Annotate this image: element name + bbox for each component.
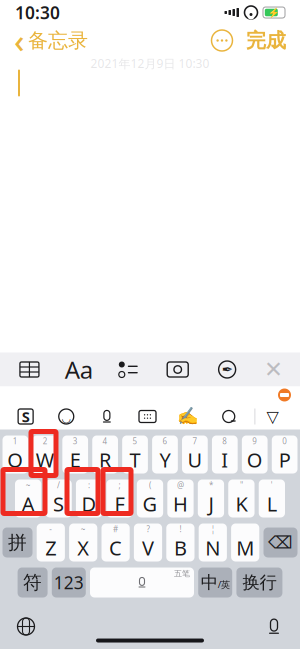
button[interactable]: ; xyxy=(106,479,133,517)
staticText: 五笔 xyxy=(174,569,190,578)
staticText: 备忘录 xyxy=(28,28,88,53)
button[interactable]: 5 xyxy=(122,435,148,473)
staticText: Z xyxy=(45,534,56,561)
staticText: 3 xyxy=(73,436,78,446)
button[interactable]: 7 xyxy=(182,435,208,473)
button[interactable]: 切换键盘 xyxy=(8,612,44,640)
button[interactable]: @ xyxy=(167,479,194,517)
button[interactable]: ~ xyxy=(69,523,97,561)
button[interactable]: * xyxy=(198,479,224,517)
button[interactable]: 相机 xyxy=(158,352,198,386)
button[interactable]: 收起键盘 xyxy=(255,404,289,429)
button[interactable]: ¦ xyxy=(199,523,227,561)
staticText: 2 xyxy=(43,436,48,446)
button[interactable]: : xyxy=(76,479,102,517)
button[interactable]: - xyxy=(37,523,65,561)
staticText: W xyxy=(36,446,55,473)
button[interactable]: 听写 xyxy=(256,612,292,640)
staticText: @ xyxy=(177,480,184,490)
staticText: D xyxy=(82,490,97,517)
staticText: ‹ xyxy=(14,19,24,62)
staticText: ; xyxy=(118,480,120,490)
staticText: ⌫ xyxy=(268,533,293,552)
button[interactable]: 8 xyxy=(212,435,238,473)
staticText: ▽ xyxy=(266,407,278,426)
button[interactable]: 输入法 xyxy=(11,404,41,429)
button[interactable]: 搜索 xyxy=(214,404,244,429)
staticText: H xyxy=(173,490,188,517)
staticText: S xyxy=(53,490,64,517)
button[interactable]: 123 xyxy=(52,567,86,597)
button[interactable]: ! xyxy=(166,523,194,561)
button[interactable]: 1 xyxy=(2,435,28,473)
staticText: L xyxy=(267,490,277,517)
staticText: P xyxy=(279,446,291,473)
button[interactable]: 关闭 xyxy=(257,352,291,386)
staticText: ✕ xyxy=(264,357,283,382)
button[interactable]: 换行 xyxy=(236,567,282,597)
staticText: M xyxy=(236,534,254,561)
button[interactable]: 清单 xyxy=(108,352,148,386)
staticText: ~ xyxy=(81,524,86,534)
staticText: C xyxy=(109,534,122,561)
staticText: 2021年12月9日 10:30 xyxy=(90,55,209,71)
button[interactable]: 表格 xyxy=(9,352,49,386)
staticText: X xyxy=(77,534,89,561)
staticText: B xyxy=(174,534,187,561)
staticText: # xyxy=(113,524,118,534)
button[interactable] xyxy=(231,523,259,561)
staticText: 4 xyxy=(103,436,108,446)
staticText: / xyxy=(57,480,60,490)
button[interactable]: " xyxy=(228,479,255,517)
staticText: ✍ xyxy=(177,407,199,426)
staticText: I xyxy=(221,446,228,473)
button[interactable]: 拼 xyxy=(2,527,32,557)
staticText: 完成 xyxy=(246,28,286,53)
staticText: 1 xyxy=(13,436,18,446)
staticText: G xyxy=(142,490,157,517)
button[interactable]: # xyxy=(101,523,130,561)
button[interactable]: 键盘 xyxy=(132,404,162,429)
button[interactable]: 6 xyxy=(152,435,178,473)
staticText: Y xyxy=(159,446,170,473)
staticText: 6 xyxy=(162,436,167,446)
button[interactable]: 手写 xyxy=(173,404,203,429)
staticText: R xyxy=(99,446,111,473)
staticText: K xyxy=(235,490,247,517)
button[interactable]: 2 xyxy=(32,435,58,473)
button[interactable]: ‹ xyxy=(6,15,96,66)
button[interactable]: ? xyxy=(134,523,162,561)
button[interactable]: 0 xyxy=(272,435,297,473)
button[interactable]: 更多 xyxy=(206,25,238,55)
staticText: 8 xyxy=(222,436,227,446)
staticText: U xyxy=(187,446,202,473)
button[interactable]: 标记 xyxy=(207,352,247,386)
button[interactable]: ' xyxy=(259,479,285,517)
staticText: 中 xyxy=(201,572,218,593)
staticText: 换行 xyxy=(242,572,276,593)
staticText: 符 xyxy=(23,571,42,594)
staticText: - xyxy=(49,524,52,534)
staticText: ⚡ xyxy=(268,7,280,18)
staticText: 9 xyxy=(252,436,257,446)
button[interactable]: 语音 xyxy=(92,404,122,429)
button[interactable]: 4 xyxy=(92,435,118,473)
staticText: ( xyxy=(149,480,151,490)
button[interactable]: / xyxy=(45,479,72,517)
button[interactable]: ~ xyxy=(15,479,41,517)
button[interactable]: 符 xyxy=(18,567,48,597)
staticText: S xyxy=(22,407,30,426)
button[interactable]: 完成 xyxy=(238,24,294,57)
button[interactable]: 表情 xyxy=(51,404,81,429)
button[interactable]: ⌫ xyxy=(263,527,297,557)
staticText: Aa xyxy=(65,354,93,385)
staticText: 10:30 xyxy=(15,1,60,24)
staticText: 5 xyxy=(132,436,137,446)
button[interactable]: 格式 xyxy=(59,352,99,386)
staticText: 123 xyxy=(54,571,84,594)
staticText: ! xyxy=(179,524,181,534)
button[interactable]: ( xyxy=(137,479,163,517)
button[interactable]: 3 xyxy=(62,435,88,473)
button[interactable]: 9 xyxy=(242,435,268,473)
staticText: ~ xyxy=(26,480,31,490)
